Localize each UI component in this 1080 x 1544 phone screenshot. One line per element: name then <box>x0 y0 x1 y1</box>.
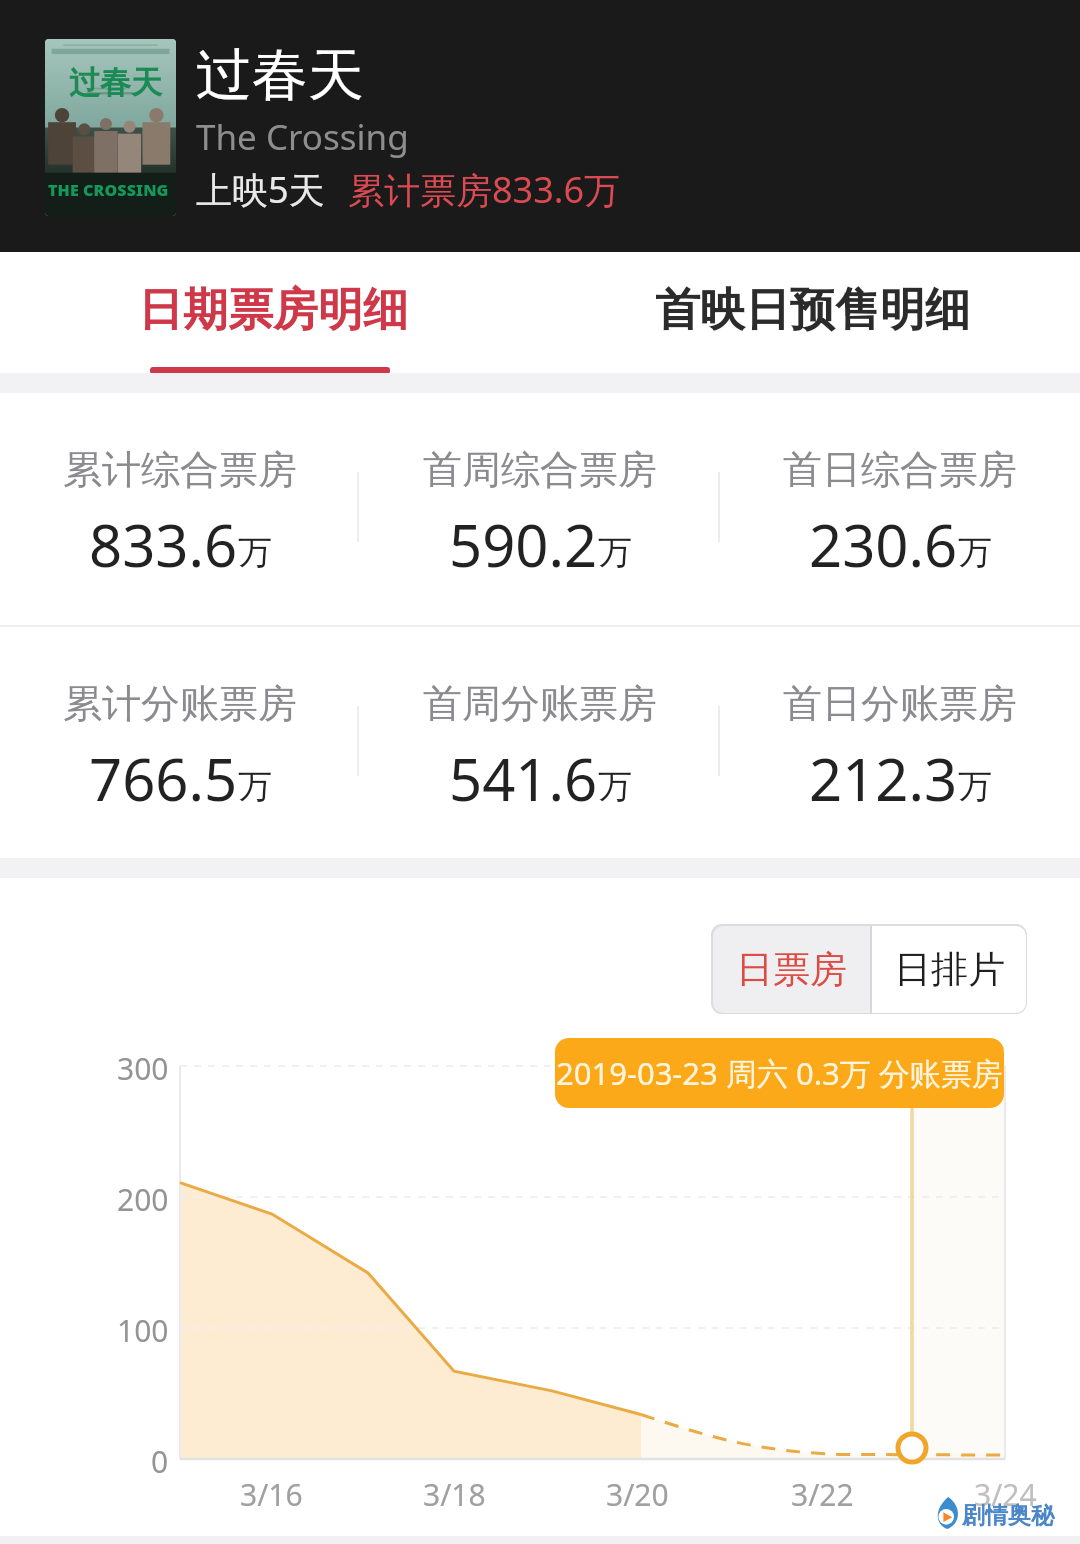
staticText: 万 <box>958 765 992 808</box>
staticText: 100 <box>117 1310 169 1351</box>
staticText: 累计分账票房 <box>63 679 297 728</box>
staticText: 3/24 <box>974 1474 1037 1515</box>
staticText: 剧情奥秘 <box>962 1501 1054 1530</box>
button[interactable]: 日票房 <box>713 926 870 1013</box>
staticText: 766.5 <box>89 739 238 818</box>
staticText: 833.6 <box>89 505 238 584</box>
staticText: 590.2 <box>449 505 598 584</box>
staticText: 首日综合票房 <box>783 445 1017 494</box>
staticText: 万 <box>598 765 632 808</box>
staticText: 万 <box>238 765 272 808</box>
staticText: 首映日预售明细 <box>655 282 970 339</box>
button[interactable]: 首日综合票房 <box>720 393 1080 625</box>
staticText: 541.6 <box>449 739 598 818</box>
staticText: 日期票房明细 <box>138 282 408 339</box>
staticText: 万 <box>958 531 992 574</box>
staticText: 日排片 <box>894 946 1005 993</box>
staticText: 3/20 <box>606 1474 669 1515</box>
staticText: 300 <box>117 1048 169 1089</box>
staticText: 0 <box>151 1441 169 1482</box>
staticText: 累计票房833.6万 <box>348 165 621 214</box>
button[interactable]: 首日分账票房 <box>720 627 1080 859</box>
staticText: 首周综合票房 <box>423 445 657 494</box>
staticText: THE CROSSING <box>48 179 169 201</box>
button[interactable]: Movie poster 过春天 <box>0 0 1080 252</box>
staticText: 3/18 <box>423 1474 486 1515</box>
staticText: 212.3 <box>809 739 958 818</box>
staticText: 上映5天 <box>196 165 325 214</box>
staticText: 3/16 <box>240 1474 303 1515</box>
button[interactable]: 累计分账票房 <box>0 627 360 859</box>
button[interactable]: 首周分账票房 <box>360 627 720 859</box>
staticText: 首日分账票房 <box>783 679 1017 728</box>
staticText: 首周分账票房 <box>423 679 657 728</box>
staticText: 万 <box>598 531 632 574</box>
button[interactable]: 首映日预售明细 <box>542 252 1080 375</box>
staticText: 过春天 <box>69 63 162 102</box>
button[interactable]: 首周综合票房 <box>360 393 720 625</box>
staticText: 过春天 <box>196 40 364 111</box>
staticText: 200 <box>117 1179 169 1220</box>
staticText: The Crossing <box>196 113 409 161</box>
button[interactable]: 日期票房明细 <box>3 252 543 375</box>
staticText: 日票房 <box>736 946 847 993</box>
button[interactable]: 日排片 <box>872 926 1026 1013</box>
staticText: 累计综合票房 <box>63 445 297 494</box>
staticText: 万 <box>238 531 272 574</box>
button[interactable]: Movie poster 过春天 <box>45 39 176 216</box>
button[interactable]: 累计综合票房 <box>0 393 360 625</box>
staticText: 230.6 <box>809 505 958 584</box>
staticText: 2019-03-23 周六 0.3万 分账票房 <box>556 1052 1003 1094</box>
staticText: 3/22 <box>791 1474 854 1515</box>
